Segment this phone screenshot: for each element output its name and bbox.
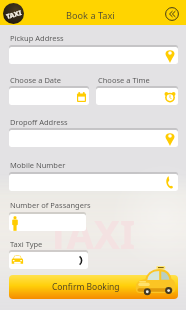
button[interactable]: Back	[165, 7, 179, 21]
staticText: Book a Taxi	[66, 9, 115, 22]
button[interactable]: Taxi logo	[3, 3, 24, 24]
button[interactable]	[9, 174, 178, 191]
staticText: Pickup Address	[10, 33, 64, 43]
staticText: Confirm Booking	[52, 281, 120, 293]
button[interactable]: Confirm Booking	[9, 275, 178, 299]
staticText: TAXI	[47, 207, 136, 260]
button[interactable]	[9, 252, 88, 269]
button[interactable]	[9, 88, 89, 105]
staticText: Mobile Number	[10, 160, 66, 170]
staticText: Number of Passangers	[10, 200, 91, 210]
staticText: Dropoff Address	[10, 117, 68, 127]
button[interactable]	[9, 130, 178, 147]
button[interactable]	[96, 88, 178, 105]
staticText: Taxi Type	[10, 239, 43, 249]
staticText: Choose a Time	[98, 75, 150, 85]
staticText: TAXI	[5, 8, 23, 21]
button[interactable]	[9, 47, 178, 64]
staticText: Choose a Date	[10, 75, 61, 85]
button[interactable]	[9, 214, 86, 231]
